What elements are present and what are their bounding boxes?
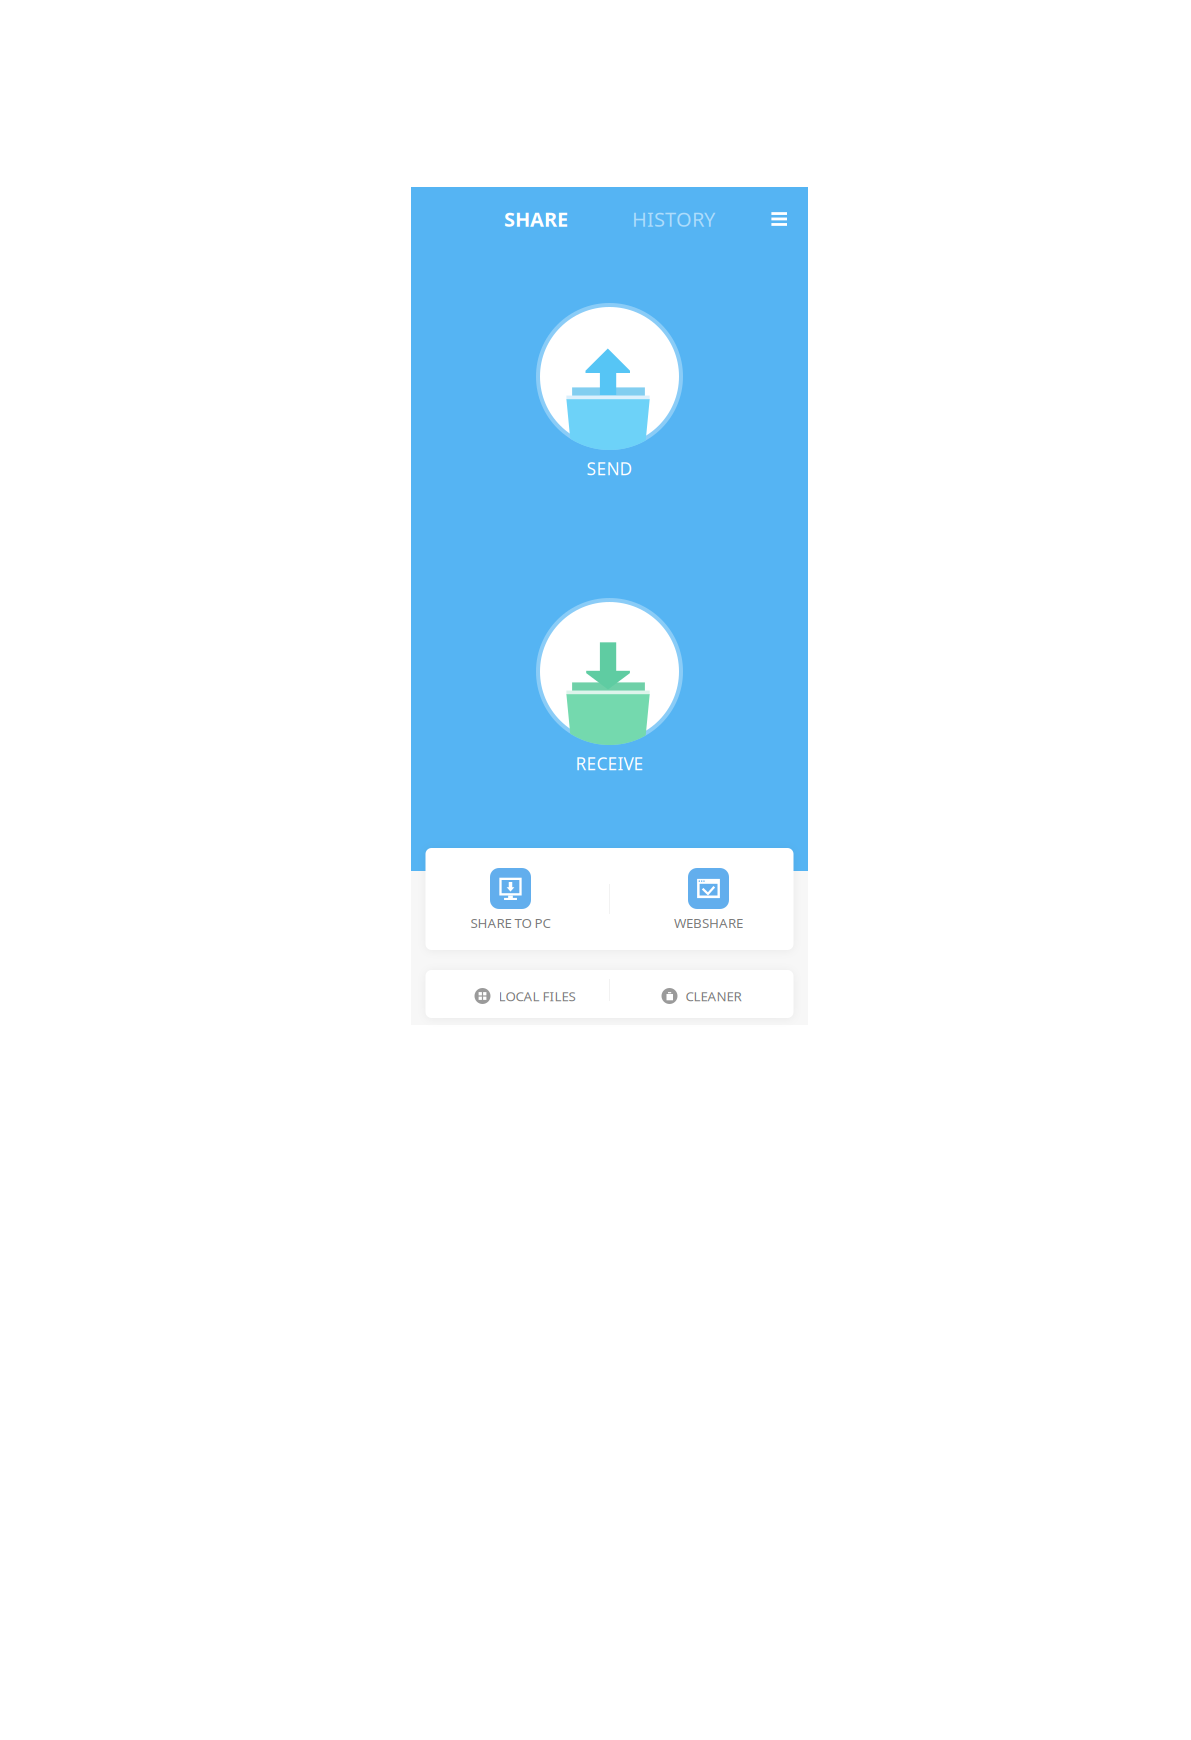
button[interactable]: CLEANER	[661, 972, 776, 1020]
staticText: CLEANER	[685, 987, 741, 1005]
button[interactable]: Menu	[771, 212, 787, 226]
staticText: WEBSHARE	[674, 914, 743, 932]
button[interactable]: RECEIVE	[536, 598, 683, 775]
staticText: SHARE TO PC	[470, 914, 550, 932]
button[interactable]: SEND	[536, 303, 683, 480]
staticText: RECEIVE	[575, 752, 643, 775]
staticText: SEND	[586, 457, 632, 480]
button[interactable]: WEBSHARE	[633, 848, 783, 950]
staticText: HISTORY	[632, 206, 715, 232]
staticText: SHARE	[504, 206, 568, 232]
button[interactable]: LOCAL FILES	[474, 972, 589, 1020]
button[interactable]: HISTORY	[632, 206, 715, 232]
button[interactable]: SHARE TO PC	[435, 848, 585, 950]
staticText: LOCAL FILES	[498, 987, 575, 1005]
button[interactable]: SHARE	[504, 206, 568, 232]
